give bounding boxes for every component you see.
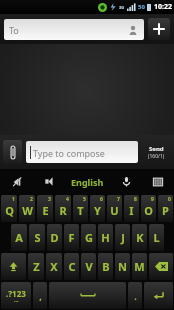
- staticText: W: [22, 203, 33, 218]
- staticText: 3G: [119, 5, 125, 10]
- button[interactable]: 0: [158, 195, 173, 222]
- staticText: F: [68, 230, 75, 245]
- staticText: X: [50, 259, 58, 274]
- button[interactable]: English: [65, 169, 110, 194]
- staticText: J: [121, 230, 125, 245]
- button[interactable]: X: [46, 253, 62, 280]
- staticText: Y: [94, 203, 101, 218]
- staticText: 0: [168, 196, 171, 203]
- button[interactable]: 2: [19, 195, 35, 222]
- staticText: To: [9, 24, 19, 36]
- button[interactable]: Previous: [0, 169, 33, 194]
- staticText: D: [50, 230, 59, 245]
- button[interactable]: 4: [55, 195, 71, 222]
- button[interactable]: B: [98, 253, 113, 280]
- staticText: ,: [39, 290, 42, 302]
- staticText: T: [77, 203, 84, 218]
- staticText: Z: [33, 259, 40, 274]
- button[interactable]: F: [64, 224, 79, 251]
- button[interactable]: V: [81, 253, 96, 280]
- button[interactable]: .: [128, 282, 142, 309]
- staticText: E: [42, 203, 49, 218]
- staticText: Send: [149, 145, 164, 153]
- button[interactable]: .?123: [1, 282, 31, 309]
- staticText: 8: [134, 196, 137, 203]
- staticText: U: [110, 203, 119, 218]
- button[interactable]: M: [132, 253, 147, 280]
- button[interactable]: 6: [90, 195, 105, 222]
- button[interactable]: C: [64, 253, 79, 280]
- button[interactable]: L: [149, 224, 164, 251]
- staticText: 5: [83, 196, 86, 203]
- staticText: G: [85, 230, 93, 245]
- staticText: B: [102, 259, 110, 274]
- staticText: 7: [117, 196, 120, 203]
- staticText: 10:22: [154, 2, 172, 12]
- staticText: 1: [12, 196, 15, 203]
- staticText: O: [144, 203, 153, 218]
- button[interactable]: J: [115, 224, 130, 251]
- button[interactable]: Attach: [3, 140, 22, 164]
- button[interactable]: N: [115, 253, 130, 280]
- button[interactable]: [149, 253, 173, 280]
- staticText: .: [134, 290, 137, 302]
- button[interactable]: [49, 282, 126, 309]
- button[interactable]: Sound: [33, 169, 65, 194]
- button[interactable]: Z: [28, 253, 44, 280]
- button[interactable]: G: [81, 224, 96, 251]
- button[interactable]: 1: [1, 195, 17, 222]
- staticText: 6: [100, 196, 103, 203]
- staticText: L: [153, 230, 160, 245]
- staticText: I: [129, 203, 134, 218]
- staticText: S: [34, 230, 41, 245]
- button[interactable]: 8: [124, 195, 139, 222]
- button[interactable]: ,: [33, 282, 47, 309]
- button[interactable]: H: [98, 224, 113, 251]
- staticText: C: [68, 259, 76, 274]
- button[interactable]: Add recipient: [148, 18, 170, 40]
- button[interactable]: Keyboard settings: [142, 169, 174, 194]
- button[interactable]: [144, 282, 173, 309]
- button[interactable]: 7: [107, 195, 122, 222]
- button[interactable]: K: [132, 224, 147, 251]
- staticText: R: [59, 203, 67, 218]
- button[interactable]: 5: [73, 195, 88, 222]
- staticText: 9: [151, 196, 154, 203]
- staticText: N: [118, 259, 127, 274]
- staticText: (160/1): [148, 153, 165, 160]
- button[interactable]: D: [47, 224, 62, 251]
- staticText: Type to compose: [33, 147, 105, 159]
- staticText: 50: [138, 3, 145, 11]
- staticText: M: [134, 259, 145, 274]
- staticText: 2: [30, 196, 33, 203]
- button[interactable]: 3: [37, 195, 53, 222]
- button[interactable]: [1, 253, 26, 280]
- staticText: K: [136, 230, 144, 245]
- staticText: H: [101, 230, 110, 245]
- staticText: V: [85, 259, 93, 274]
- button[interactable]: Type to compose: [26, 141, 138, 163]
- staticText: •••: [14, 299, 19, 304]
- button[interactable]: 9: [141, 195, 156, 222]
- staticText: A: [15, 230, 23, 245]
- button[interactable]: Voice input: [110, 169, 142, 194]
- staticText: 3: [48, 196, 51, 203]
- button[interactable]: S: [29, 224, 45, 251]
- staticText: P: [162, 203, 169, 218]
- staticText: Q: [5, 203, 14, 218]
- staticText: English: [71, 176, 104, 188]
- button[interactable]: Send: [141, 135, 171, 169]
- button[interactable]: To: [4, 19, 144, 40]
- staticText: .?123: [6, 288, 26, 299]
- button[interactable]: A: [11, 224, 27, 251]
- staticText: 4: [66, 196, 69, 203]
